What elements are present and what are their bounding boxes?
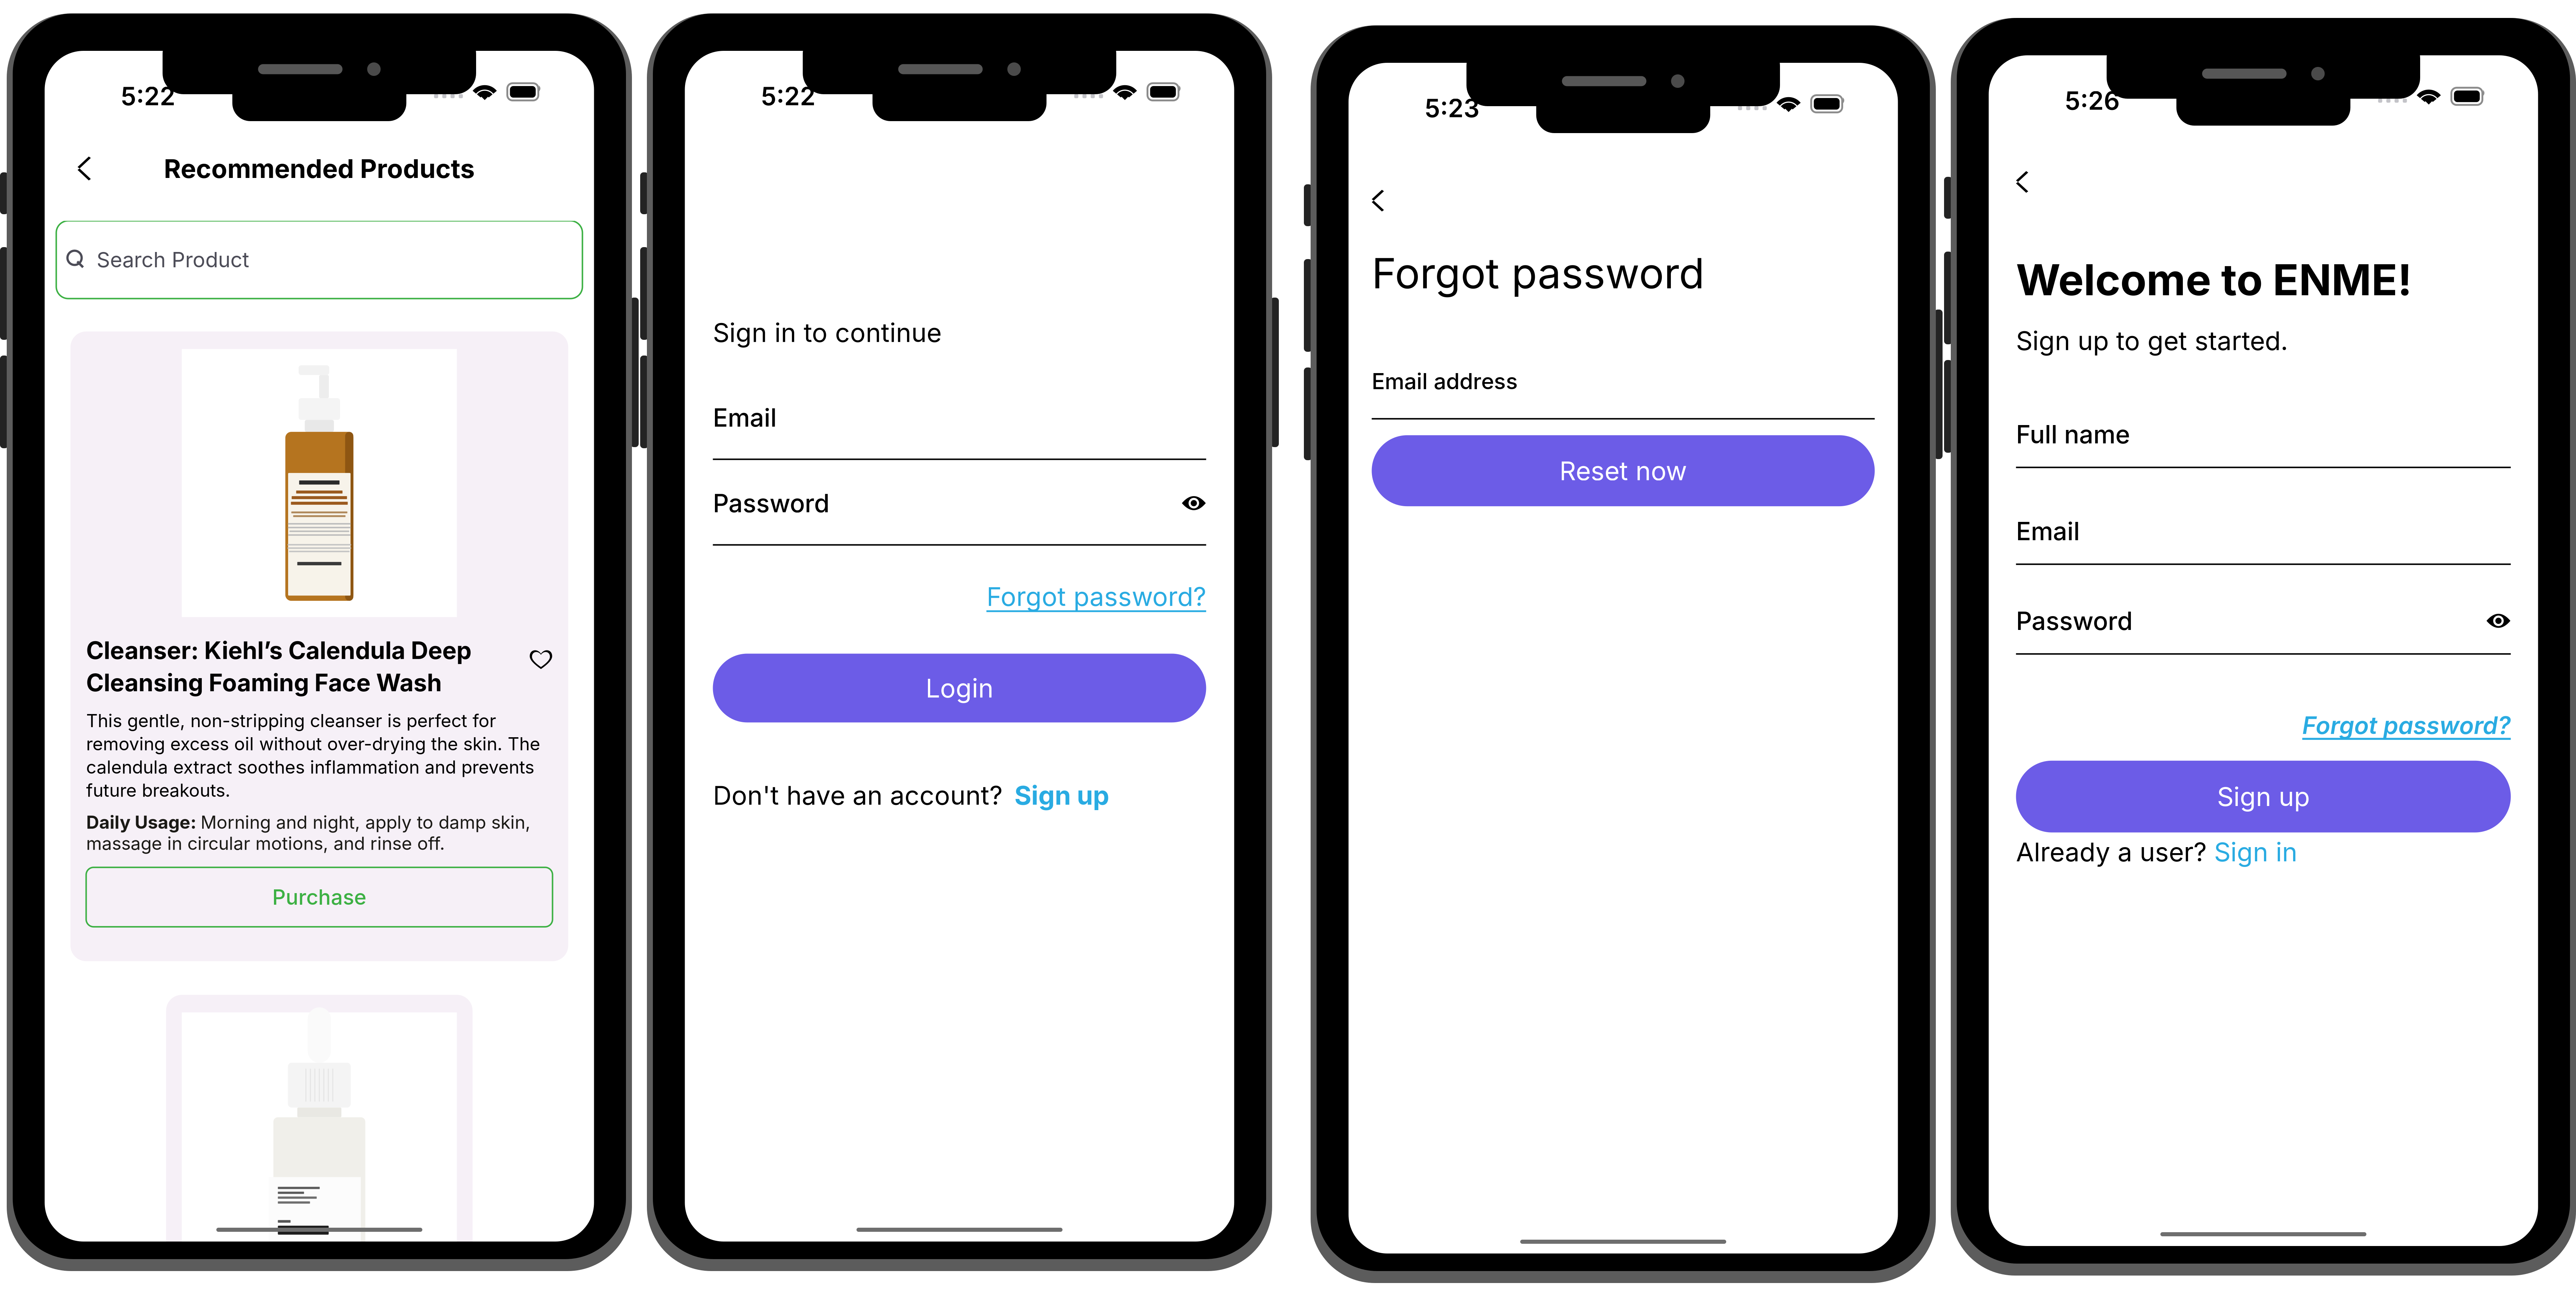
button[interactable]: Forgot password? [2016, 711, 2511, 740]
staticText: Email [713, 402, 777, 433]
staticText: Sign up to get started. [2016, 325, 2288, 356]
staticText: Forgot password [1372, 248, 1705, 298]
staticText: Forgot password? [2302, 711, 2511, 740]
staticText: Sign up [2217, 781, 2310, 812]
staticText: Password [2016, 606, 2133, 636]
button[interactable]: Reset now [1372, 435, 1875, 506]
button[interactable]: Back [2016, 167, 2036, 197]
staticText: Already a user? [2016, 836, 2207, 868]
staticText: Purchase [272, 884, 366, 910]
staticText: Sign in to continue [713, 317, 942, 348]
staticText: Forgot password? [986, 581, 1206, 612]
button[interactable]: Favourite [529, 636, 553, 669]
staticText: Email address [1372, 368, 1518, 394]
button[interactable]: Show password [1181, 494, 1206, 512]
button[interactable]: Login [713, 654, 1206, 722]
button[interactable]: Search Product [45, 221, 594, 299]
staticText: 5:22 [761, 81, 816, 111]
button[interactable]: Sign in [2207, 836, 2297, 868]
button[interactable]: Sign up [2016, 761, 2511, 832]
staticText: 5:22 [121, 81, 175, 111]
staticText: Sign in [2207, 836, 2297, 868]
staticText: Login [925, 672, 994, 704]
staticText: Welcome to ENME! [2016, 254, 2412, 306]
staticText: Recommended Products [164, 153, 475, 184]
staticText: Reset now [1559, 455, 1687, 486]
staticText: Cleanser: Kiehl’s Calendula Deep Cleansi… [86, 636, 471, 697]
button[interactable]: Forgot password? [713, 581, 1206, 612]
staticText: This gentle, non-stripping cleanser is p… [86, 710, 540, 801]
staticText: 5:23 [1424, 93, 1479, 123]
staticText: Email [2016, 516, 2080, 546]
staticText: 5:26 [2065, 86, 2120, 116]
staticText: Don't have an account? [713, 780, 1002, 811]
button[interactable]: Back [1372, 186, 1391, 215]
button[interactable]: Sign up [1002, 780, 1109, 811]
staticText: Full name [2016, 419, 2130, 449]
button[interactable]: Purchase [86, 867, 553, 927]
button[interactable]: Show password [2486, 612, 2511, 630]
staticText: Password [713, 488, 829, 518]
staticText: Daily Usage: Morning and night, apply to… [86, 812, 530, 854]
staticText: Search Product [97, 247, 249, 272]
staticText: Sign up [1002, 780, 1109, 811]
button[interactable]: Back [72, 153, 97, 184]
